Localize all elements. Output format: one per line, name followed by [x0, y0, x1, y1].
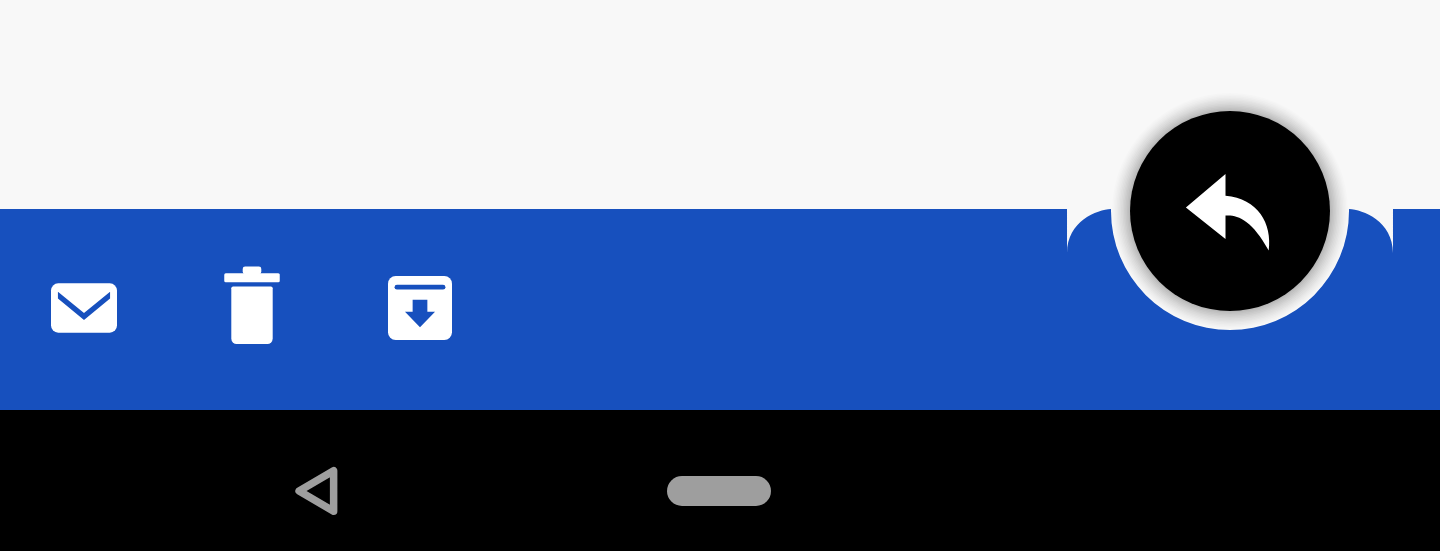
button[interactable]: Delete: [208, 264, 296, 352]
button[interactable]: Home: [675, 447, 763, 535]
button[interactable]: Back: [276, 447, 364, 535]
button[interactable]: Archive: [376, 264, 464, 352]
button[interactable]: Mail: [40, 264, 128, 352]
button[interactable]: Reply: [1130, 111, 1330, 311]
